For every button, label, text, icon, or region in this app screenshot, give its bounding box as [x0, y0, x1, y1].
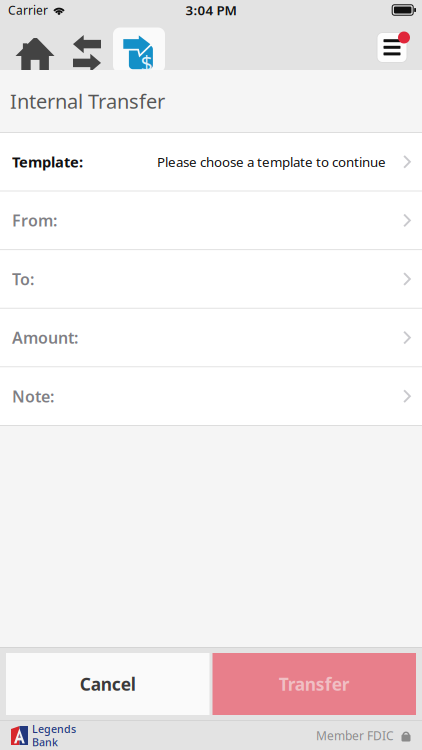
button[interactable]: To:: [0, 250, 422, 309]
button[interactable]: Note:: [0, 367, 422, 426]
button[interactable]: Transfer: [212, 653, 416, 715]
staticText: From:: [12, 210, 57, 231]
button[interactable]: Template:: [0, 133, 422, 192]
button[interactable]: From:: [0, 192, 422, 250]
staticText: Transfer: [279, 672, 350, 695]
staticText: $: [140, 48, 152, 77]
button[interactable]: Amount:: [0, 309, 422, 367]
staticText: Internal Transfer: [10, 88, 165, 114]
staticText: Amount:: [12, 327, 78, 348]
staticText: 3:04 PM: [185, 1, 236, 19]
staticText: Legends: [32, 722, 76, 736]
staticText: Member FDIC: [316, 727, 394, 743]
staticText: Bank: [32, 735, 58, 749]
button[interactable]: Transfers: [61, 22, 113, 72]
staticText: Carrier: [8, 2, 48, 18]
staticText: To:: [12, 268, 34, 290]
staticText: Please choose a template to continue: [157, 153, 386, 171]
button[interactable]: Home: [9, 22, 61, 72]
button[interactable]: Cancel: [6, 653, 209, 715]
staticText: Template:: [12, 152, 83, 172]
staticText: Note:: [12, 386, 54, 407]
button[interactable]: Internal Transfer: [113, 22, 165, 72]
button[interactable]: Menu: [372, 17, 416, 72]
staticText: Cancel: [80, 672, 136, 695]
